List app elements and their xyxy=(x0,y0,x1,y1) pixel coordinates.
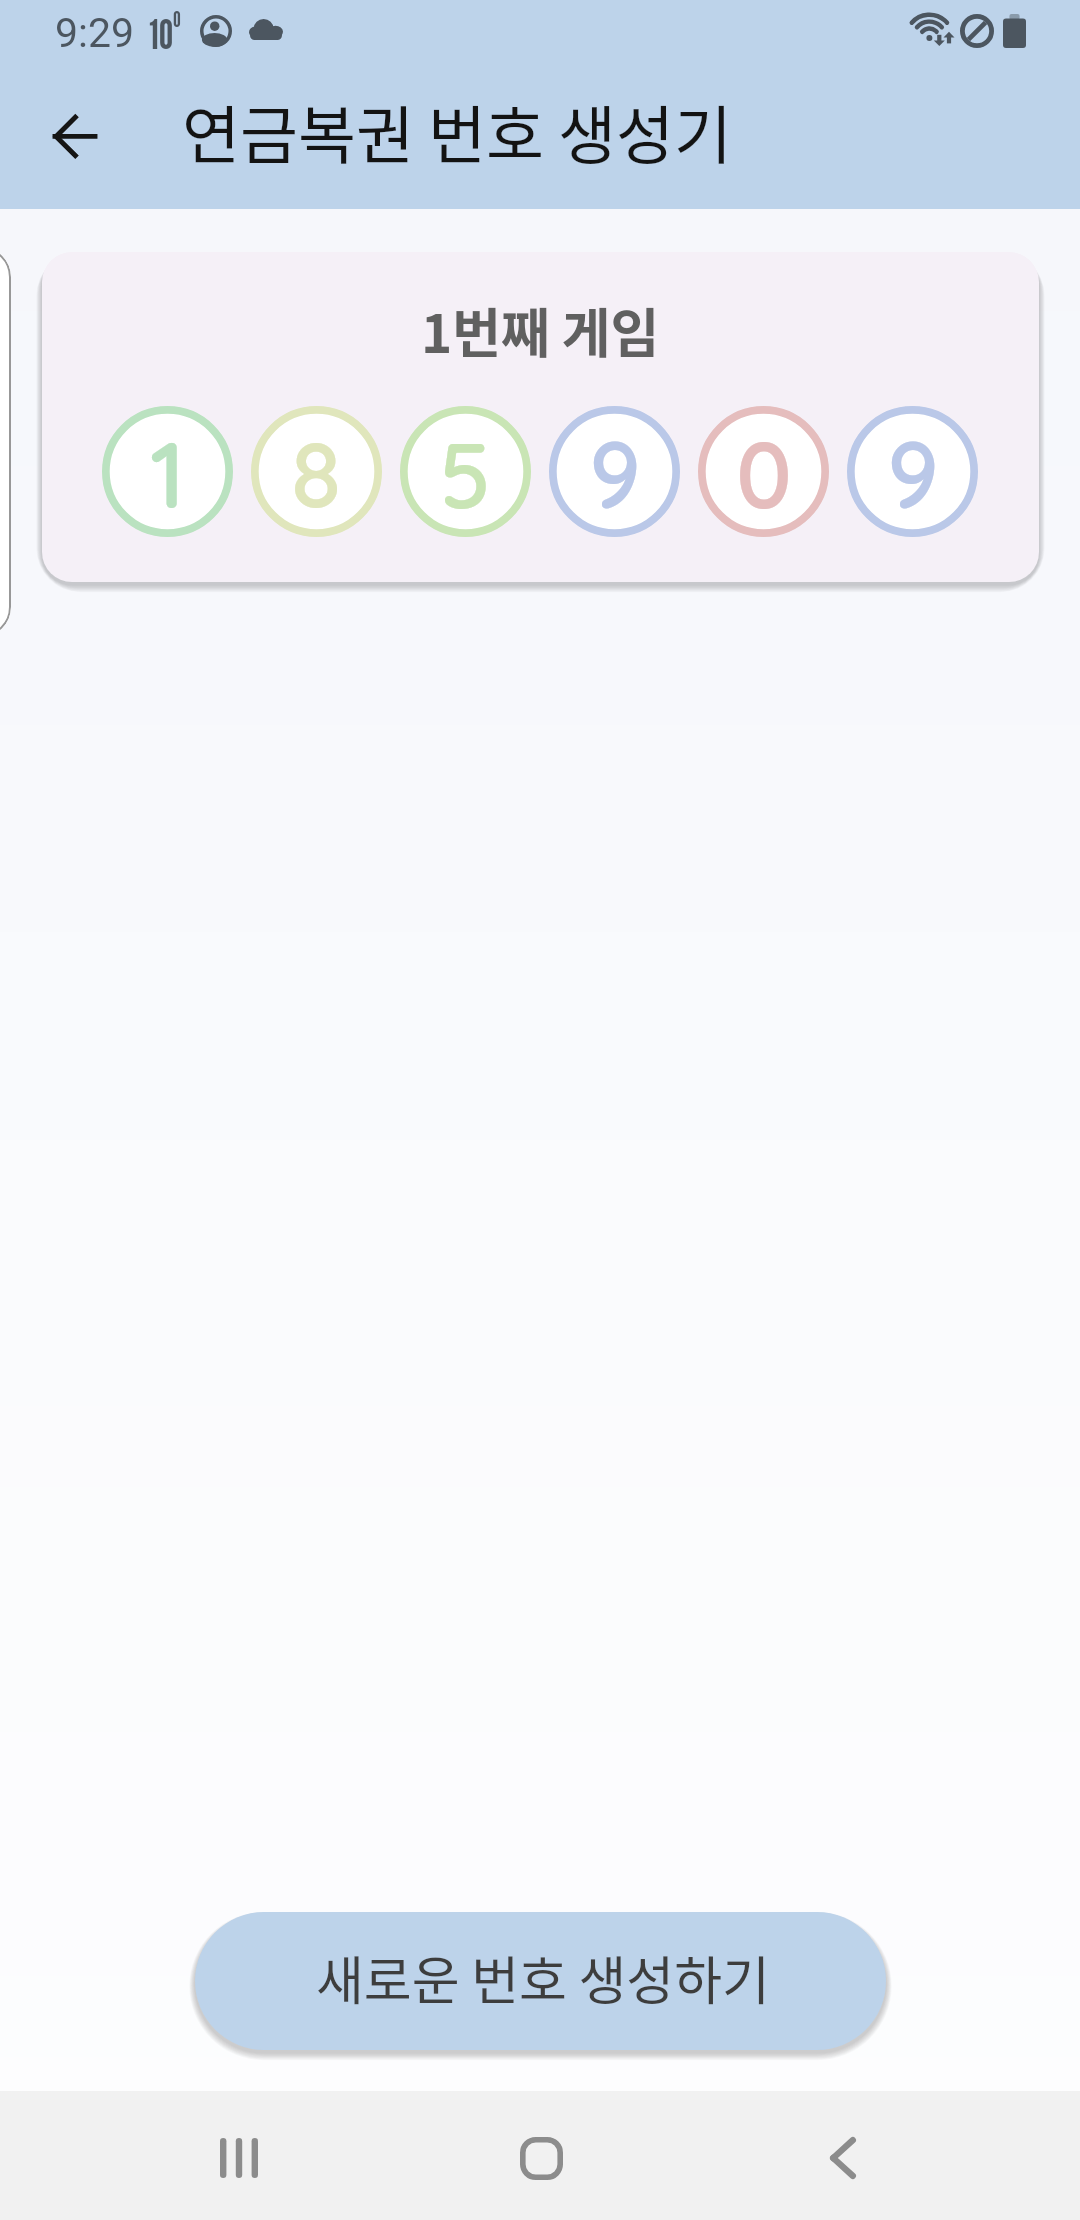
button[interactable]: Home xyxy=(497,2114,585,2202)
staticText: 1 xyxy=(150,416,186,531)
button[interactable]: Back xyxy=(799,2114,887,2202)
button[interactable]: 1번째 게임 xyxy=(42,252,1039,582)
staticText: 5 xyxy=(439,416,492,531)
staticText: 8 xyxy=(291,416,342,531)
button[interactable]: 새로운 번호 생성하기 xyxy=(195,1912,886,2050)
staticText: 9:29 xyxy=(55,9,135,57)
button[interactable]: Recent apps xyxy=(195,2114,283,2202)
staticText: 9 xyxy=(887,416,939,531)
staticText: 새로운 번호 생성하기 xyxy=(316,1940,770,2015)
staticText: 0 xyxy=(173,6,181,32)
staticText: 10 xyxy=(149,9,174,58)
button[interactable]: Back xyxy=(29,92,117,180)
staticText: 연금복권 번호 생성기 xyxy=(182,85,732,176)
staticText: 1번째 게임 xyxy=(421,292,660,369)
staticText: 9 xyxy=(589,416,641,531)
staticText: 0 xyxy=(736,416,792,531)
